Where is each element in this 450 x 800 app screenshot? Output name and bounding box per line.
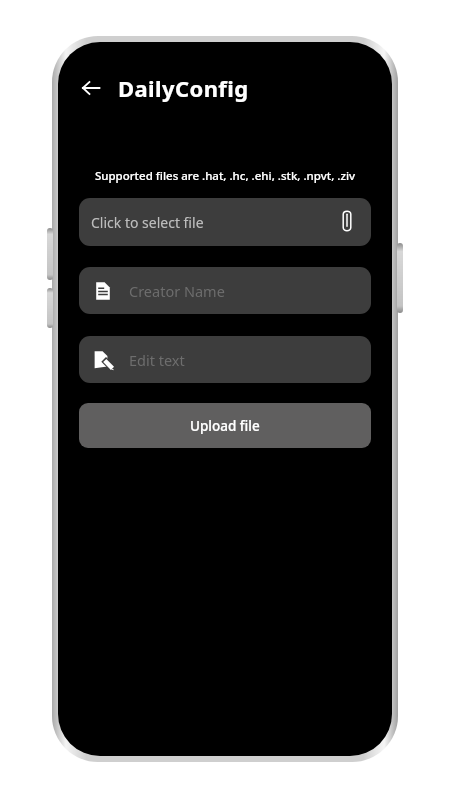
staticText: Upload file	[190, 417, 260, 435]
staticText: DailyConfig	[118, 73, 249, 103]
button[interactable]: Upload file	[79, 403, 371, 448]
staticText: Supported files are .hat, .hc, .ehi, .st…	[74, 168, 376, 184]
other: Attach file	[335, 210, 359, 234]
staticText: Creator Name	[129, 281, 225, 301]
button[interactable]: Edit text	[79, 336, 371, 383]
button[interactable]: Back	[72, 69, 110, 107]
button[interactable]: Creator Name	[79, 267, 371, 314]
staticText: Edit text	[129, 350, 185, 370]
staticText: Click to select file	[91, 213, 204, 232]
button[interactable]: Click to select file	[79, 198, 371, 246]
